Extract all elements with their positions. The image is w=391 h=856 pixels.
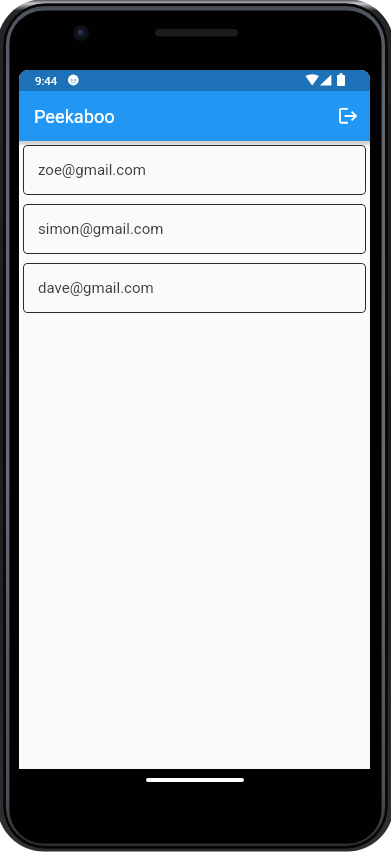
button[interactable]: dave@gmail.com xyxy=(23,263,366,313)
staticText: zoe@gmail.com xyxy=(38,161,146,179)
button[interactable]: zoe@gmail.com xyxy=(23,145,366,195)
staticText: Peekaboo xyxy=(34,106,115,127)
button[interactable]: simon@gmail.com xyxy=(23,204,366,254)
button[interactable]: Log out xyxy=(323,91,369,141)
staticText: 9:44 xyxy=(35,74,58,87)
staticText: dave@gmail.com xyxy=(38,279,154,297)
staticText: simon@gmail.com xyxy=(38,220,164,238)
